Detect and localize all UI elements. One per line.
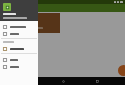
button[interactable]: Home xyxy=(57,77,69,85)
button[interactable] xyxy=(0,30,38,37)
button[interactable] xyxy=(0,56,38,63)
button[interactable]: Close navigation drawer xyxy=(0,0,125,77)
button[interactable]: Recent apps xyxy=(91,77,103,85)
button[interactable] xyxy=(0,0,38,21)
button[interactable] xyxy=(0,13,60,33)
button[interactable] xyxy=(0,45,38,52)
button[interactable] xyxy=(0,23,38,30)
button[interactable]: Add xyxy=(118,65,125,76)
button[interactable] xyxy=(0,63,38,70)
